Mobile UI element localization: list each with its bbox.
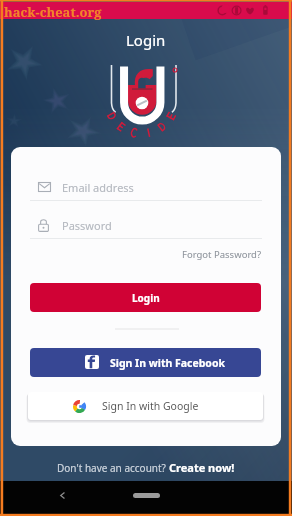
staticText: hack-cheat.org: [4, 3, 102, 20]
staticText: Login: [126, 30, 166, 50]
button[interactable]: Create now!: [169, 460, 235, 475]
button[interactable]: Password: [38, 213, 254, 237]
staticText: Password: [62, 218, 112, 233]
button[interactable]: Login: [30, 283, 261, 312]
button[interactable]: Back: [57, 490, 68, 501]
button[interactable]: Forgot Password?: [161, 246, 262, 262]
button[interactable]: Home: [133, 493, 160, 498]
button[interactable]: Sign In with Facebook: [30, 348, 261, 377]
staticText: Email address: [62, 180, 134, 195]
button[interactable]: Sign In with Google: [28, 392, 263, 420]
button[interactable]: Email address: [38, 175, 254, 199]
staticText: Don't have an account?: [57, 461, 169, 475]
staticText: Sign In with Facebook: [110, 356, 226, 370]
staticText: Sign In with Google: [102, 399, 199, 413]
staticText: Create now!: [169, 460, 235, 475]
staticText: Forgot Password?: [182, 248, 262, 261]
staticText: Login: [132, 291, 160, 305]
